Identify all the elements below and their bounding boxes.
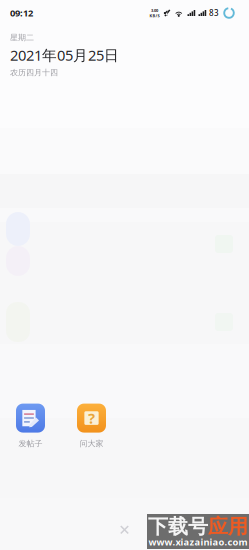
staticText: 下载号	[148, 514, 208, 539]
button[interactable]: ?	[61, 402, 122, 450]
staticText: 农历四月十四	[10, 68, 58, 77]
staticText: 问大家	[79, 439, 103, 448]
staticText: KB/S	[149, 13, 159, 18]
staticText: 发帖子	[18, 439, 42, 448]
button[interactable]: 发帖子	[0, 402, 61, 450]
staticText: 3.00	[151, 8, 158, 13]
staticText: 2021年05月25日	[10, 45, 119, 65]
staticText: 应用	[208, 514, 248, 539]
button[interactable]: Close	[113, 518, 136, 541]
staticText: 星期二	[10, 33, 34, 42]
staticText: 09:12	[10, 7, 33, 19]
staticText: www.xiazainiao.com	[148, 536, 247, 548]
staticText: 83	[209, 8, 219, 18]
staticText: ?	[88, 408, 95, 428]
